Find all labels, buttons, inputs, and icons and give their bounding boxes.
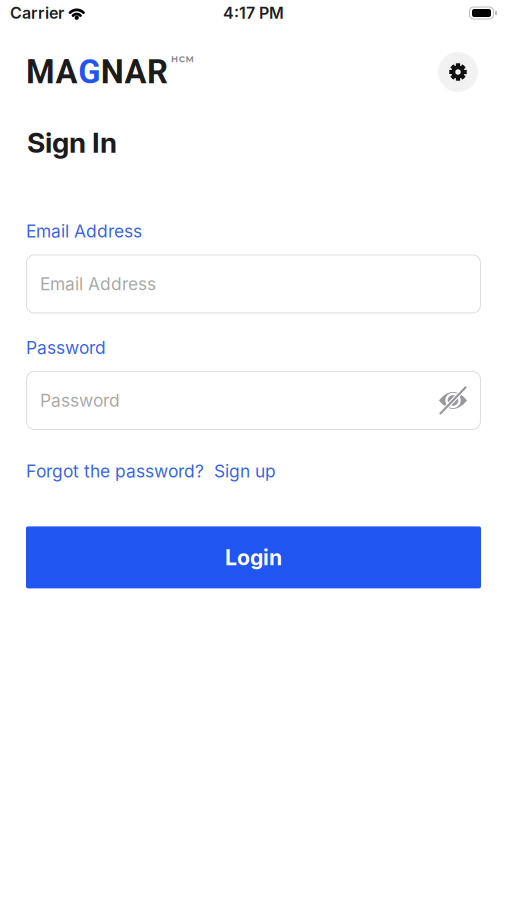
staticText: Login — [225, 545, 282, 570]
button[interactable]: Login — [26, 526, 481, 588]
staticText: Carrier — [10, 4, 64, 22]
staticText: Email Address — [40, 274, 156, 294]
staticText: Email Address — [26, 221, 142, 241]
button[interactable]: Forgot the password? — [26, 461, 204, 481]
staticText: NAR — [101, 53, 168, 91]
staticText: Password — [26, 337, 106, 358]
staticText: MA — [26, 53, 78, 91]
button[interactable]: Sign up — [214, 461, 276, 481]
staticText: Forgot the password? — [26, 461, 204, 481]
button[interactable]: Settings — [438, 52, 478, 92]
staticText: 4:17 PM — [223, 4, 284, 22]
staticText: Password — [40, 390, 120, 411]
staticText: Sign In — [27, 126, 117, 159]
button[interactable]: Show password — [439, 386, 467, 414]
staticText: HCM — [171, 54, 194, 64]
staticText: G — [78, 53, 100, 91]
staticText: Sign up — [214, 461, 276, 481]
